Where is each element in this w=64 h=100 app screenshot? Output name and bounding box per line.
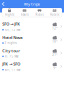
button[interactable]: Hotel Nova <box>0 33 64 46</box>
button[interactable]: JFK → SFO <box>0 60 64 73</box>
staticText: JFK → SFO <box>2 61 20 67</box>
staticText: SFO → JFK <box>2 21 20 27</box>
button[interactable]: Rides <box>32 9 47 16</box>
staticText: Hotel Nova <box>2 35 22 40</box>
button[interactable]: Tickets <box>17 9 32 16</box>
staticText: Rides <box>35 13 43 16</box>
button[interactable]: Flights <box>2 9 17 16</box>
staticText: Hotels <box>50 13 59 16</box>
staticText: My trips <box>24 1 40 7</box>
staticText: Sun, 17 Mar <box>4 68 20 71</box>
staticText: 21° <box>52 53 57 57</box>
staticText: Flights <box>5 13 14 16</box>
staticText: 12° <box>52 27 57 30</box>
staticText: Tickets <box>20 13 28 16</box>
staticText: 18° <box>52 40 57 43</box>
staticText: Fri, 15 Mar <box>4 55 18 58</box>
button[interactable]: SFO → JFK <box>0 20 64 33</box>
staticText: 3 nights <box>4 41 16 45</box>
staticText: 9° <box>53 66 56 70</box>
button[interactable]: Hotels <box>47 9 62 16</box>
staticText: Tue, 12 Mar <box>4 28 20 31</box>
staticText: City tour <box>2 48 20 53</box>
button[interactable]: City tour <box>0 46 64 60</box>
button[interactable]: Back <box>0 1 6 7</box>
